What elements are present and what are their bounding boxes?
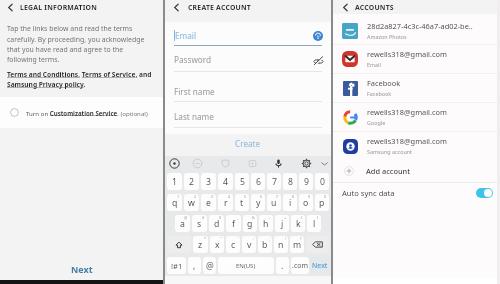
button[interactable]: 1 bbox=[167, 173, 182, 190]
staticText: Email bbox=[175, 30, 197, 41]
button[interactable]: r bbox=[218, 194, 233, 211]
staticText: u bbox=[271, 197, 277, 209]
staticText: * bbox=[204, 236, 206, 241]
button[interactable]: g bbox=[243, 215, 257, 232]
button[interactable]: u bbox=[267, 194, 281, 211]
button[interactable]: d bbox=[209, 215, 224, 232]
button[interactable]: 9 bbox=[299, 173, 313, 190]
staticText: !#1 bbox=[171, 261, 183, 271]
button[interactable]: w bbox=[184, 194, 199, 211]
button[interactable]: m bbox=[290, 236, 304, 253]
staticText: @ bbox=[184, 215, 188, 220]
button[interactable]: i bbox=[283, 194, 297, 211]
button[interactable]: rewells318@gmail.com bbox=[333, 131, 500, 160]
button[interactable]: Stickers bbox=[192, 158, 203, 169]
button[interactable]: x bbox=[210, 236, 224, 253]
button[interactable]: GIF bbox=[220, 158, 231, 169]
button[interactable]: z bbox=[193, 236, 208, 253]
staticText: CREATE ACCOUNT bbox=[188, 3, 251, 12]
button[interactable]: a bbox=[175, 215, 190, 232]
button[interactable]: o bbox=[299, 194, 313, 211]
button[interactable]: Clipboard bbox=[247, 158, 258, 169]
staticText: Email bbox=[367, 61, 381, 68]
staticText: y bbox=[256, 197, 261, 209]
staticText: l bbox=[313, 218, 316, 230]
button[interactable]: y bbox=[251, 194, 265, 211]
staticText: 1 bbox=[177, 194, 180, 199]
staticText: 5 bbox=[240, 176, 245, 188]
button[interactable]: f bbox=[226, 215, 241, 232]
button[interactable]: b bbox=[258, 236, 272, 253]
staticText: & bbox=[252, 215, 255, 220]
staticText: 9 bbox=[304, 176, 309, 188]
button[interactable]: rewells318@gmail.com bbox=[333, 44, 500, 73]
button[interactable]: 4 bbox=[218, 173, 233, 190]
button[interactable]: Back bbox=[171, 2, 182, 13]
button[interactable]: e bbox=[201, 194, 216, 211]
staticText: i bbox=[289, 197, 292, 209]
button[interactable]: 28d2a827-4c3c-46a7-ad02-be.. bbox=[333, 16, 500, 45]
button[interactable]: 5 bbox=[235, 173, 249, 190]
staticText: 1 bbox=[172, 176, 177, 188]
button[interactable]: Back bbox=[340, 2, 351, 13]
button[interactable]: n bbox=[274, 236, 288, 253]
button[interactable]: h bbox=[259, 215, 273, 232]
button[interactable]: p bbox=[315, 194, 329, 211]
button[interactable]: @ bbox=[203, 257, 216, 274]
button[interactable]: 6 bbox=[251, 173, 265, 190]
staticText: a bbox=[180, 218, 185, 230]
button[interactable]: 7 bbox=[267, 173, 281, 190]
button[interactable]: .com bbox=[291, 257, 309, 274]
staticText: + bbox=[284, 215, 287, 220]
button[interactable]: Expand toolbar bbox=[169, 158, 180, 169]
button[interactable]: Facebook bbox=[333, 73, 500, 102]
button[interactable]: Next bbox=[0, 258, 163, 280]
staticText: 28d2a827-4c3c-46a7-ad02-be.. bbox=[367, 21, 473, 31]
staticText: @ bbox=[206, 260, 214, 272]
staticText: x bbox=[215, 239, 220, 251]
button[interactable]: Shift bbox=[167, 236, 191, 253]
button[interactable]: 3 bbox=[201, 173, 216, 190]
button[interactable]: Voice input bbox=[273, 158, 284, 169]
button[interactable]: !#1 bbox=[167, 257, 186, 274]
staticText: Next bbox=[312, 261, 328, 271]
button[interactable]: l bbox=[307, 215, 321, 232]
button[interactable]: rewells318@gmail.com bbox=[333, 102, 500, 131]
button[interactable]: 0 bbox=[315, 173, 329, 190]
button[interactable]: v bbox=[242, 236, 256, 253]
staticText: rewells318@gmail.com bbox=[367, 49, 447, 59]
button[interactable]: Help bbox=[313, 31, 323, 41]
button[interactable]: t bbox=[235, 194, 249, 211]
staticText: Add account bbox=[366, 166, 411, 176]
button[interactable]: Create bbox=[165, 136, 331, 150]
button[interactable]: . bbox=[276, 257, 289, 274]
button[interactable]: Keyboard settings bbox=[301, 158, 312, 169]
staticText: ) bbox=[317, 215, 319, 220]
button[interactable]: s bbox=[192, 215, 207, 232]
staticText: 2 bbox=[189, 176, 194, 188]
staticText: f bbox=[232, 218, 235, 230]
button[interactable]: Auto sync data bbox=[333, 183, 500, 203]
button[interactable]: , bbox=[188, 257, 201, 274]
button[interactable]: Next bbox=[311, 257, 329, 274]
button[interactable]: k bbox=[291, 215, 305, 232]
staticText: Tap the links below and read the terms bbox=[7, 24, 133, 33]
button[interactable]: Collapse keyboard bbox=[319, 158, 330, 169]
staticText: g bbox=[247, 218, 253, 230]
button[interactable]: 8 bbox=[283, 173, 297, 190]
button[interactable]: Backspace bbox=[306, 236, 329, 253]
button[interactable]: j bbox=[275, 215, 289, 232]
button[interactable]: Back bbox=[5, 2, 16, 13]
staticText: h bbox=[263, 218, 269, 230]
button[interactable]: Turn on Customization Service, (optional… bbox=[0, 97, 163, 128]
staticText: 8 bbox=[288, 176, 293, 188]
button[interactable]: Add account bbox=[333, 160, 500, 182]
button[interactable]: q bbox=[167, 194, 182, 211]
staticText: k bbox=[296, 218, 301, 230]
staticText: 3 bbox=[211, 194, 214, 199]
staticText: 6 bbox=[260, 194, 263, 199]
button[interactable]: Show password bbox=[313, 56, 324, 67]
button[interactable]: EN(US) bbox=[218, 257, 274, 274]
button[interactable]: 2 bbox=[184, 173, 199, 190]
button[interactable]: c bbox=[226, 236, 240, 253]
